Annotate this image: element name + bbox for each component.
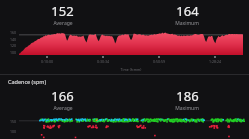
staticText: Time (h:mm) [19, 67, 243, 72]
staticText: 150 [10, 119, 17, 124]
staticText: 140 [10, 37, 17, 42]
staticText: 0:30:34 [97, 59, 109, 64]
staticText: 120 [10, 43, 17, 48]
staticText: 164 [176, 2, 199, 20]
button[interactable]: 152 [51, 2, 74, 27]
staticText: 166 [51, 87, 74, 105]
button[interactable]: 166 [51, 87, 74, 112]
staticText: 100 [10, 50, 17, 55]
staticText: 160 [10, 30, 17, 35]
staticText: 0:50:59 [153, 59, 165, 64]
button[interactable]: 186 [175, 87, 199, 112]
staticText: Cadence (spm) [8, 78, 47, 85]
staticText: 1:28:24 [209, 59, 221, 64]
staticText: Average [53, 20, 73, 27]
staticText: 100 [10, 129, 17, 134]
button[interactable]: 164 [175, 2, 199, 27]
staticText: Maximum [175, 105, 199, 112]
staticText: 152 [51, 2, 74, 20]
staticText: Average [53, 105, 73, 112]
button[interactable]: Cadence chart [19, 113, 243, 139]
button[interactable]: Heart rate chart [19, 31, 243, 55]
staticText: 186 [176, 87, 199, 105]
staticText: 0:10:00 [41, 59, 53, 64]
staticText: Maximum [175, 20, 199, 27]
